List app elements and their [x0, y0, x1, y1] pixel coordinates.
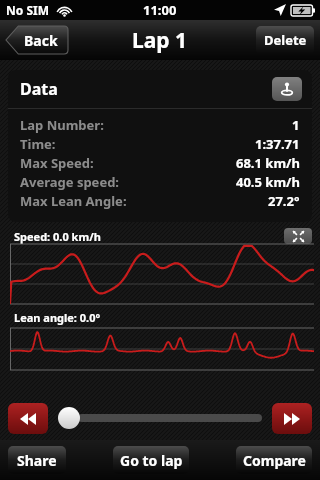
button[interactable]: Share: [8, 446, 66, 474]
staticText: Share: [17, 451, 57, 470]
staticText: Go to lap: [120, 451, 183, 470]
staticText: 1:37.71: [255, 135, 300, 153]
button[interactable]: Compare: [236, 446, 312, 474]
button[interactable]: Rewind: [8, 403, 48, 434]
staticText: Average speed:: [20, 173, 120, 191]
staticText: Lap Number:: [20, 116, 104, 134]
staticText: Data: [20, 78, 58, 100]
staticText: Lap 1: [132, 26, 188, 55]
staticText: No SIM: [6, 2, 49, 18]
staticText: Time:: [20, 135, 56, 153]
staticText: Max Lean Angle:: [20, 192, 127, 210]
staticText: 11:00: [143, 1, 177, 19]
staticText: 68.1 km/h: [236, 154, 300, 172]
staticText: Max Speed:: [20, 154, 94, 172]
button[interactable]: Back: [6, 26, 68, 54]
staticText: Delete: [264, 31, 307, 49]
button[interactable]: Expand chart: [284, 228, 312, 244]
button[interactable]: Fast forward: [272, 403, 312, 434]
staticText: Lean angle: 0.0°: [14, 310, 101, 325]
button[interactable]: Delete: [256, 26, 314, 54]
staticText: 40.5 km/h: [236, 173, 300, 191]
staticText: 1: [292, 116, 300, 134]
staticText: 27.2°: [268, 192, 300, 210]
staticText: Speed: 0.0 km/h: [14, 229, 101, 244]
button[interactable]: Go to lap: [113, 446, 189, 474]
staticText: Compare: [243, 451, 306, 470]
button[interactable]: Playback position: [58, 407, 80, 429]
staticText: Back: [24, 31, 58, 50]
button[interactable]: Show on map: [272, 77, 302, 101]
